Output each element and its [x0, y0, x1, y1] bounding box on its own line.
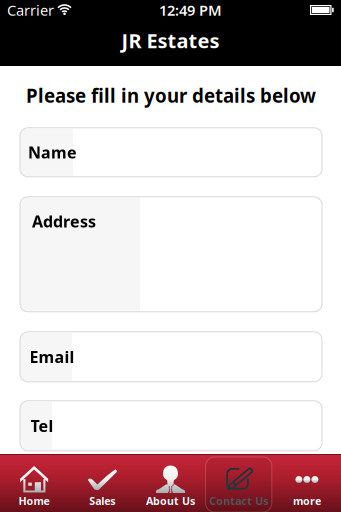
staticText: About Us: [146, 494, 195, 508]
button[interactable]: Contact Us: [205, 454, 273, 512]
staticText: Sales: [89, 494, 115, 508]
staticText: Name: [28, 142, 77, 163]
staticText: 12:49 PM: [159, 0, 222, 20]
button[interactable]: Tel: [20, 401, 322, 451]
staticText: Home: [19, 494, 50, 508]
staticText: Carrier: [7, 0, 54, 20]
staticText: Tel: [30, 415, 53, 436]
button[interactable]: Sales: [68, 454, 136, 512]
button[interactable]: Home: [0, 454, 68, 512]
button[interactable]: Name: [20, 128, 322, 177]
staticText: Email: [29, 346, 74, 367]
staticText: Please fill in your details below: [26, 83, 316, 108]
staticText: Address: [32, 211, 96, 232]
button[interactable]: more: [273, 454, 341, 512]
staticText: JR Estates: [121, 27, 219, 54]
button[interactable]: Address: [20, 197, 322, 312]
button[interactable]: Email: [20, 332, 322, 382]
button[interactable]: About Us: [136, 454, 205, 512]
staticText: more: [293, 494, 321, 508]
staticText: Contact Us: [209, 494, 268, 508]
